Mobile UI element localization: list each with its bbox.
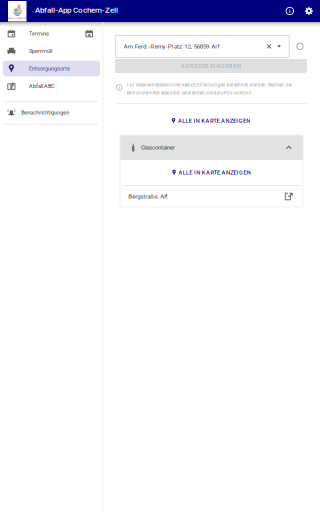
staticText: ALLE IN KARTE ANZEIGEN bbox=[178, 169, 251, 176]
staticText: Entsorgungsorte bbox=[29, 65, 70, 72]
button[interactable]: ALLE IN KARTE ANZEIGEN bbox=[115, 107, 307, 135]
staticText: Termine bbox=[29, 30, 49, 37]
staticText: ADRESSE EINGEBEN bbox=[181, 63, 241, 69]
staticText: Am Ferd.-Remy-Platz 12, 56859 Alf bbox=[123, 43, 219, 50]
button[interactable]: Bergstraße, Alf bbox=[120, 186, 303, 207]
button[interactable]: ADRESSE EINGEBEN bbox=[115, 59, 307, 73]
button[interactable]: Einstellungen bbox=[301, 0, 317, 22]
button[interactable]: Entsorgungsorte bbox=[3, 61, 100, 76]
button[interactable]: Aktuellen Standort verwenden bbox=[292, 35, 308, 57]
button[interactable]: Glascontainer bbox=[120, 135, 303, 160]
button[interactable]: Termine exportieren bbox=[83, 27, 95, 39]
staticText: Landkreis Cochem-Zell bbox=[6, 17, 28, 19]
staticText: eine andere Adresse oder verwenden Sie d… bbox=[127, 90, 252, 96]
button[interactable]: Info bbox=[282, 0, 298, 22]
button[interactable]: Vorschläge anzeigen bbox=[274, 35, 285, 57]
staticText: Bergstraße, Alf bbox=[128, 193, 167, 200]
staticText: Benachrichtigungen bbox=[21, 109, 69, 116]
button[interactable]: ALLE IN KARTE ANZEIGEN bbox=[120, 160, 303, 185]
button[interactable]: Abfall ABC bbox=[3, 78, 100, 94]
button[interactable]: Termine bbox=[3, 26, 100, 41]
staticText: Abfall ABC bbox=[29, 83, 55, 89]
staticText: Sperrmüll bbox=[29, 48, 52, 54]
button[interactable]: Eingabe löschen bbox=[265, 35, 274, 57]
staticText: Abfall-App Cochem-Zell bbox=[35, 5, 118, 15]
staticText: Glascontainer bbox=[141, 144, 175, 151]
button[interactable]: Sperrmüll bbox=[3, 43, 100, 59]
button[interactable]: Benachrichtigungen bbox=[3, 105, 100, 120]
staticText: Für diese Adresse können keine Entfernun… bbox=[127, 82, 292, 88]
staticText: ALLE IN KARTE ANZEIGEN bbox=[178, 117, 250, 124]
